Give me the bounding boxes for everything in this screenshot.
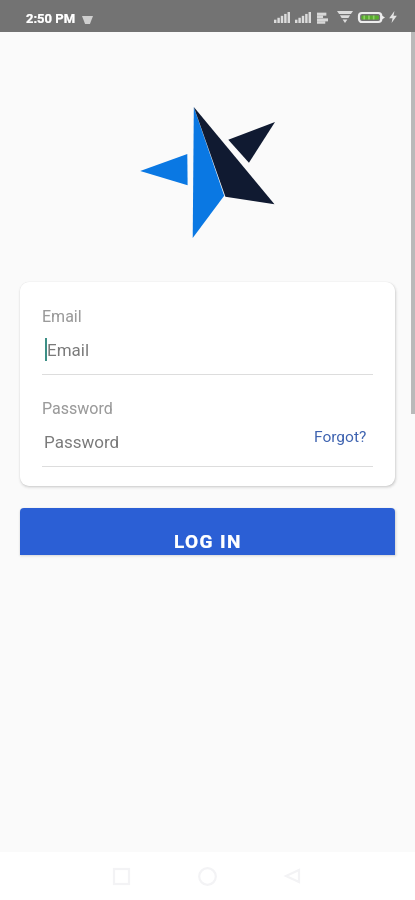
button[interactable]: Password [42,432,308,452]
button[interactable]: Forgot? [308,428,373,446]
staticText: Forgot? [314,428,367,446]
staticText: Password [44,432,120,452]
button[interactable]: LOG IN [20,508,395,555]
button[interactable]: Email [42,338,373,361]
staticText: 2:50 PM [26,11,76,26]
staticText: Password [42,399,113,418]
staticText: Email [42,307,82,326]
staticText: LOG IN [174,530,242,552]
staticText: Email [47,340,90,360]
